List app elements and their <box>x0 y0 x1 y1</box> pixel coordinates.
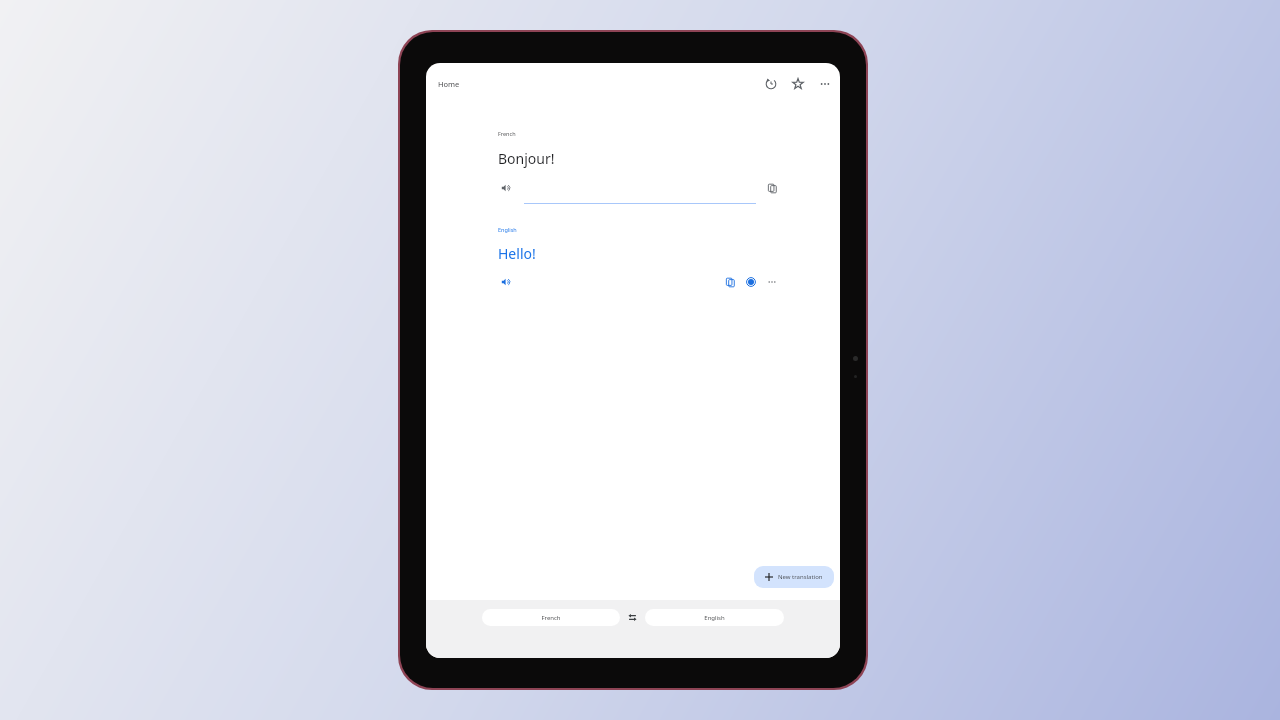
button[interactable]: Listen to translation <box>498 274 514 290</box>
button[interactable]: Saved <box>789 75 807 93</box>
button[interactable]: Save translation <box>743 274 759 290</box>
button[interactable]: More translation options <box>764 274 780 290</box>
staticText: Home <box>438 79 460 89</box>
staticText: English <box>704 614 725 622</box>
staticText: French <box>541 614 561 622</box>
staticText: English <box>498 226 517 233</box>
button[interactable]: Listen <box>498 180 514 196</box>
button[interactable]: Copy translation <box>722 274 738 290</box>
button[interactable]: Swap languages <box>620 608 645 626</box>
button[interactable]: New translation <box>754 566 834 588</box>
button[interactable]: French <box>482 609 620 626</box>
button[interactable]: Copy <box>764 180 780 196</box>
button[interactable]: English <box>645 609 784 626</box>
button[interactable]: Home <box>432 75 466 93</box>
staticText: Hello! <box>498 244 536 263</box>
staticText: New translation <box>778 573 823 581</box>
button[interactable]: More options <box>816 75 834 93</box>
staticText: Bonjour! <box>498 149 555 168</box>
button[interactable]: History <box>762 75 780 93</box>
staticText: French <box>498 130 516 137</box>
